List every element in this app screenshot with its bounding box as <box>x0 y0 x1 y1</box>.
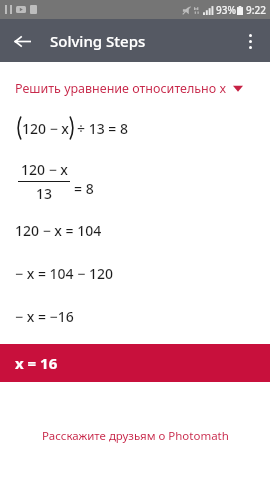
staticText: = 8 <box>74 179 94 198</box>
staticText: 9:22 <box>246 3 266 17</box>
staticText: 93% <box>216 3 236 17</box>
staticText: 120 − x = 104 <box>15 221 102 240</box>
staticText: 13 <box>36 184 53 203</box>
button[interactable]: x = 16 <box>0 344 270 382</box>
button[interactable]: More options <box>234 25 266 57</box>
staticText: − x = 104 − 120 <box>15 264 113 283</box>
staticText: Solving Steps <box>50 31 146 51</box>
staticText: Решить уравнение относительно x <box>15 80 227 97</box>
staticText: 120 − x <box>22 119 69 138</box>
staticText: 120 − x <box>21 160 68 179</box>
staticText: x = 16 <box>15 353 58 373</box>
button[interactable]: Back <box>6 25 38 57</box>
staticText: ÷ 13 = 8 <box>77 119 128 138</box>
button[interactable]: Решить уравнение относительно x <box>0 78 270 99</box>
button[interactable]: Расскажите друзьям о Photomath <box>0 424 270 448</box>
staticText: − x = −16 <box>15 307 74 326</box>
staticText: Расскажите друзьям о Photomath <box>42 428 229 444</box>
